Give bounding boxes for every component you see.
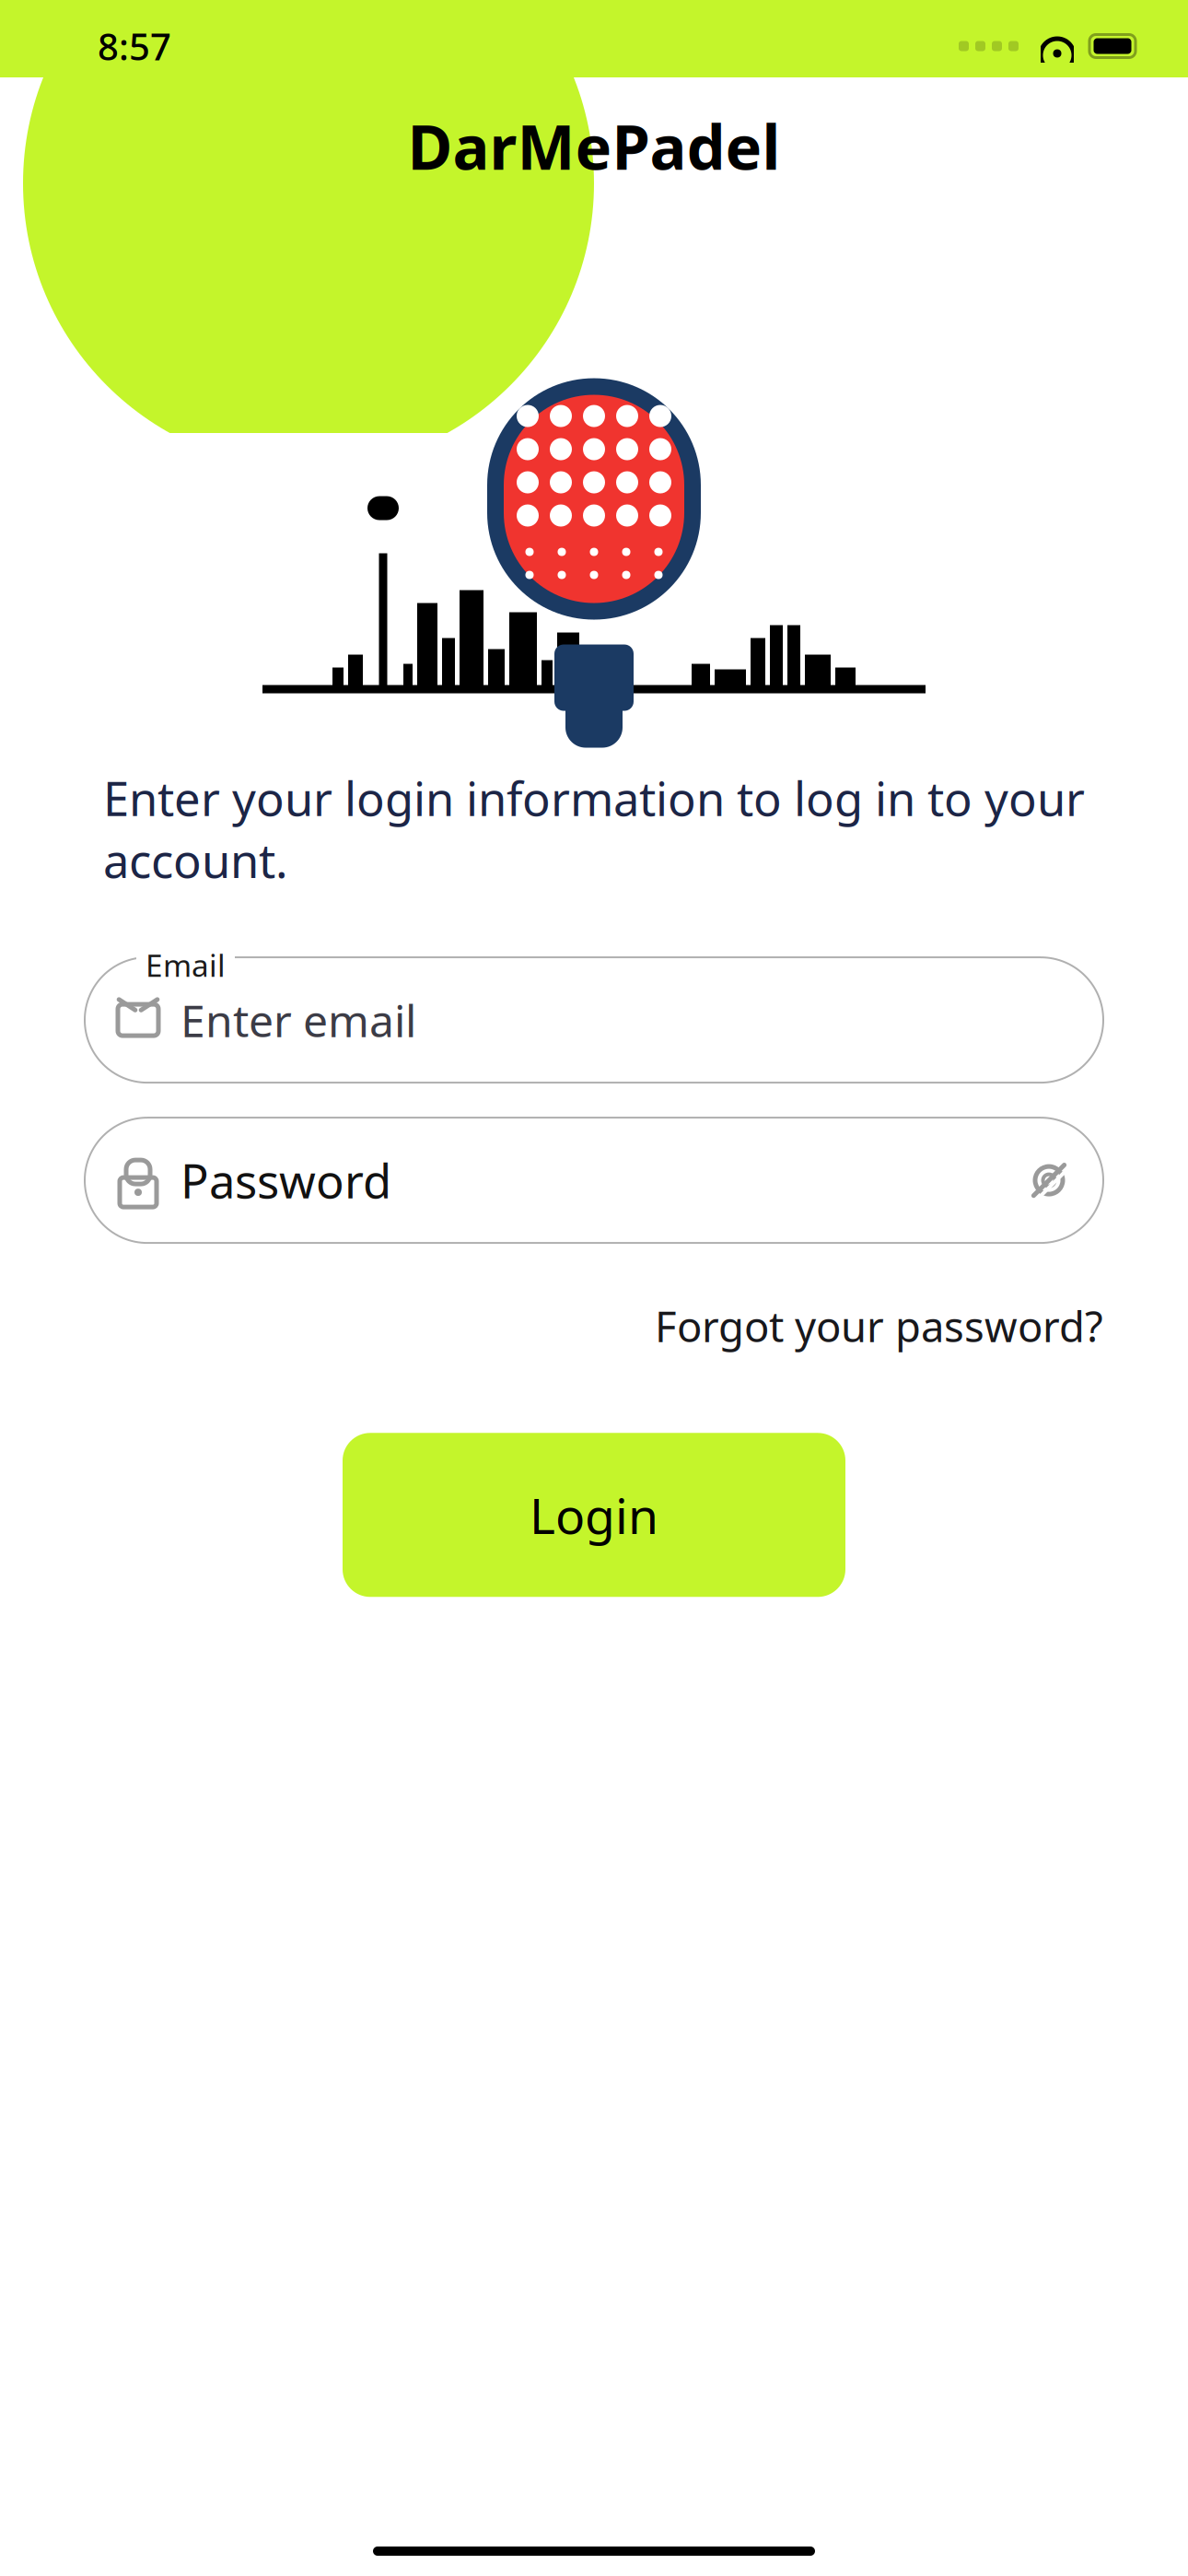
staticText: Password xyxy=(181,1149,391,1211)
staticText: DarMePadel xyxy=(408,105,780,187)
staticText: Enter email xyxy=(181,991,416,1049)
button[interactable]: Login xyxy=(343,1433,845,1597)
button[interactable]: Password xyxy=(85,1118,1103,1243)
staticText: Login xyxy=(530,1482,658,1548)
staticText: Enter your login information to log in t… xyxy=(103,767,1085,891)
button[interactable]: Enter email xyxy=(85,957,1103,1083)
staticText: Forgot your password? xyxy=(655,1298,1103,1354)
button[interactable]: Forgot your password? xyxy=(655,1298,1103,1354)
staticText: Email xyxy=(146,944,226,985)
staticText: 8:57 xyxy=(98,22,171,70)
